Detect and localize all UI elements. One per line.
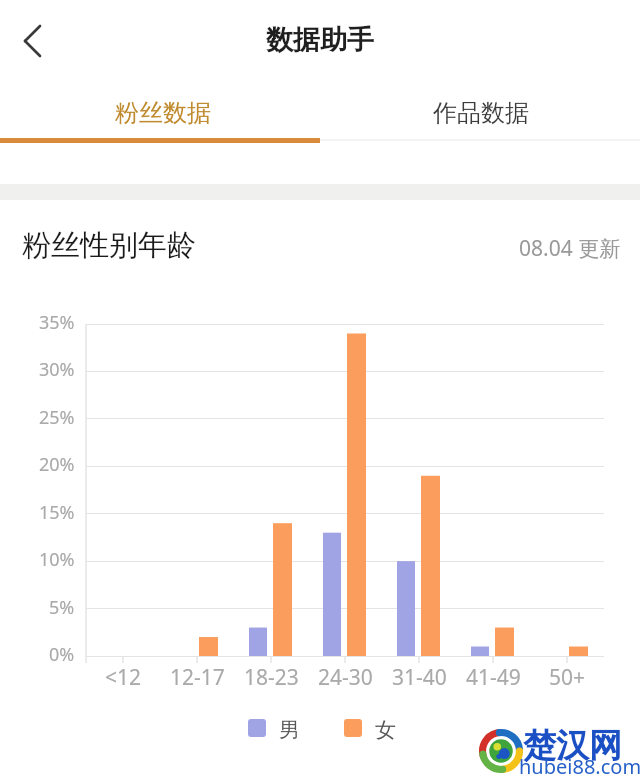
staticText: 18-23 — [244, 663, 299, 692]
staticText: 20% — [39, 452, 75, 477]
staticText: 35% — [39, 310, 75, 335]
staticText: 25% — [39, 405, 75, 430]
staticText: 31-40 — [392, 663, 447, 692]
staticText: 楚汉网 — [523, 725, 622, 767]
staticText: 24-30 — [318, 663, 373, 692]
staticText: 粉丝数据 — [115, 98, 211, 128]
staticText: 男 — [279, 717, 300, 743]
staticText: 粉丝性别年龄 — [22, 227, 196, 264]
button[interactable]: 作品数据 — [321, 86, 640, 140]
staticText: 0% — [49, 642, 75, 667]
button[interactable]: 粉丝数据 — [3, 86, 323, 140]
staticText: 15% — [39, 500, 75, 525]
staticText: 5% — [49, 595, 75, 620]
staticText: <12 — [105, 663, 142, 692]
button[interactable]: Back — [4, 13, 60, 69]
staticText: 30% — [39, 357, 75, 382]
staticText: 41-49 — [466, 663, 521, 692]
staticText: 女 — [375, 717, 396, 743]
staticText: 50+ — [549, 663, 586, 692]
staticText: 12-17 — [170, 663, 225, 692]
staticText: 10% — [39, 547, 75, 572]
staticText: 数据助手 — [266, 23, 374, 57]
staticText: hubei88.com — [519, 753, 640, 776]
staticText: 作品数据 — [433, 98, 529, 128]
staticText: 08.04 更新 — [519, 234, 621, 263]
